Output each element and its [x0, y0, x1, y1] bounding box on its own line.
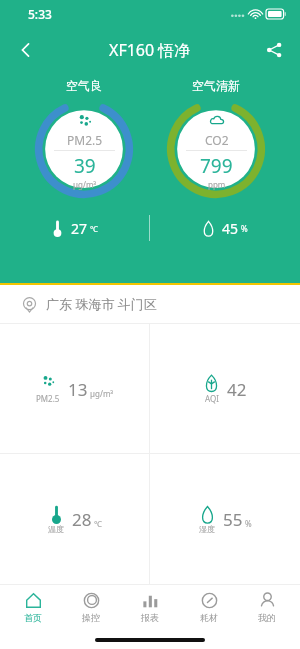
button[interactable]: 耗材 [183, 592, 235, 623]
staticText: 空气良 [66, 78, 102, 93]
button[interactable]: 我的 [241, 592, 293, 623]
staticText: 55 [223, 508, 243, 531]
staticText: PM2.5 [36, 393, 60, 404]
staticText: µg/m³ [90, 388, 114, 399]
staticText: 耗材 [200, 612, 218, 623]
staticText: 13 [68, 378, 88, 401]
button[interactable]: 温度 [0, 454, 149, 584]
button[interactable]: 首页 [7, 592, 59, 623]
button[interactable]: PM2.5 [35, 100, 133, 198]
button[interactable]: CO2 [167, 100, 265, 198]
button[interactable]: PM2.5 [0, 324, 149, 453]
button[interactable]: 操控 [65, 592, 117, 623]
button[interactable]: 广东 珠海市 斗门区 [0, 285, 300, 323]
staticText: 空气清新 [192, 78, 240, 93]
staticText: 5:33 [28, 6, 52, 22]
staticText: % [245, 518, 252, 529]
button[interactable]: 湿度 [150, 454, 300, 584]
staticText: 广东 珠海市 斗门区 [46, 295, 157, 313]
staticText: ppm [208, 179, 226, 190]
staticText: 45 [222, 219, 239, 238]
staticText: 我的 [258, 612, 276, 623]
staticText: CO2 [205, 132, 229, 148]
staticText: 799 [200, 153, 233, 179]
button[interactable]: 报表 [124, 592, 176, 623]
button[interactable]: 45 [150, 208, 300, 248]
staticText: µg/m³ [73, 179, 97, 190]
staticText: 39 [74, 153, 96, 179]
staticText: 首页 [24, 612, 42, 623]
staticText: 28 [72, 508, 92, 531]
staticText: 温度 [48, 524, 64, 534]
button[interactable]: Share [254, 30, 294, 70]
button[interactable]: 27 [0, 208, 149, 248]
staticText: PM2.5 [67, 132, 103, 148]
staticText: 操控 [82, 612, 100, 623]
staticText: XF160 悟净 [109, 39, 191, 61]
staticText: 报表 [141, 612, 159, 623]
staticText: % [241, 223, 248, 234]
button[interactable]: Back [6, 30, 46, 70]
staticText: 湿度 [199, 524, 215, 534]
staticText: AQI [205, 393, 219, 404]
staticText: ℃ [90, 223, 98, 234]
staticText: 27 [71, 219, 88, 238]
staticText: 42 [227, 378, 247, 401]
button[interactable]: AQI [150, 324, 300, 453]
staticText: ℃ [94, 518, 102, 529]
